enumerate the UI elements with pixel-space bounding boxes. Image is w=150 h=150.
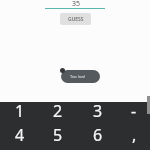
button[interactable]: 4 (2, 123, 38, 147)
staticText: 1 (15, 100, 25, 122)
button[interactable]: 6 (80, 123, 116, 147)
button[interactable]: 3 (80, 99, 116, 123)
staticText: 2 (53, 100, 63, 122)
staticText: 3 (93, 100, 103, 122)
staticText: 6 (93, 124, 103, 146)
button[interactable]: 2 (40, 99, 76, 123)
staticText: GUESS (68, 16, 84, 23)
button[interactable]: 5 (40, 123, 76, 147)
staticText: Too low! (70, 74, 86, 79)
button[interactable]: , (116, 123, 150, 147)
staticText: - (131, 100, 137, 122)
button[interactable]: - (116, 99, 150, 123)
button[interactable]: 1 (2, 99, 38, 123)
staticText: 4 (15, 124, 25, 146)
staticText: 5 (53, 124, 63, 146)
button[interactable]: GUESS (60, 13, 91, 25)
staticText: , (132, 124, 137, 146)
staticText: 35 (72, 0, 81, 8)
